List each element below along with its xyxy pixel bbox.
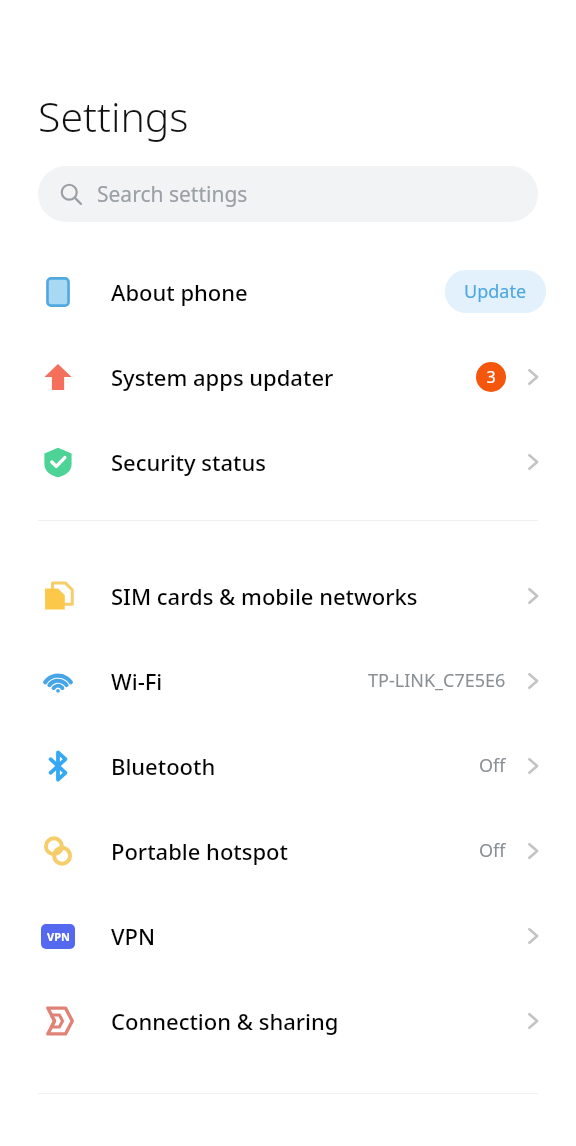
button[interactable]: About phone [0, 249, 576, 334]
staticText: Wi-Fi [111, 666, 368, 696]
staticText: VPN [111, 921, 520, 951]
staticText: Off [479, 838, 506, 863]
button[interactable]: Update [445, 270, 546, 313]
staticText: Connection & sharing [111, 1006, 520, 1036]
button[interactable]: Security status [0, 419, 576, 504]
staticText: Settings [38, 88, 189, 144]
staticText: System apps updater [111, 362, 476, 392]
staticText: Off [479, 753, 506, 778]
staticText: SIM cards & mobile networks [111, 581, 520, 611]
staticText: 3 [486, 366, 496, 388]
staticText: Bluetooth [111, 751, 479, 781]
button[interactable]: System apps updater [0, 334, 576, 419]
button[interactable]: Portable hotspot [0, 808, 576, 893]
staticText: Update [464, 279, 527, 304]
staticText: VPN [47, 929, 70, 944]
staticText: About phone [111, 277, 445, 307]
staticText: Search settings [97, 180, 248, 209]
button[interactable]: Connection & sharing [0, 978, 576, 1063]
button[interactable]: Search settings [38, 166, 538, 222]
staticText: Portable hotspot [111, 836, 479, 866]
button[interactable]: SIM cards & mobile networks [0, 553, 576, 638]
button[interactable]: VPN [0, 893, 576, 978]
button[interactable]: Wi-Fi [0, 638, 576, 723]
staticText: TP-LINK_C7E5E6 [368, 668, 506, 693]
staticText: Security status [111, 447, 520, 477]
button[interactable]: Bluetooth [0, 723, 576, 808]
